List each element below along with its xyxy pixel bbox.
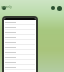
staticText: greenly bbox=[1, 5, 12, 9]
